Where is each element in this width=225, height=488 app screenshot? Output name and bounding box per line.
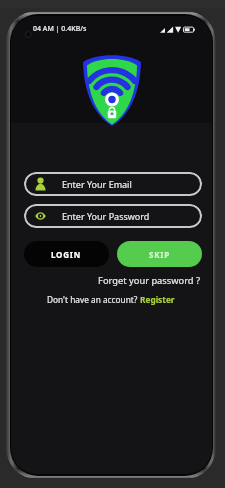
button[interactable]: Forget your password ? bbox=[11, 274, 200, 287]
staticText: Enter Your Email bbox=[62, 178, 132, 190]
button[interactable]: Enter Your Password bbox=[24, 204, 202, 228]
staticText: LOGIN bbox=[51, 249, 82, 260]
button[interactable]: Enter Your Email bbox=[24, 172, 202, 196]
button[interactable]: LOGIN bbox=[24, 241, 109, 267]
staticText: Enter Your Password bbox=[62, 210, 150, 222]
button[interactable]: Register bbox=[140, 294, 175, 305]
staticText: 04 AM | 0.4KB/s bbox=[33, 24, 87, 34]
staticText: Don't have an account? bbox=[47, 294, 140, 305]
staticText: SKIP bbox=[149, 249, 170, 260]
button[interactable]: SKIP bbox=[117, 241, 202, 267]
